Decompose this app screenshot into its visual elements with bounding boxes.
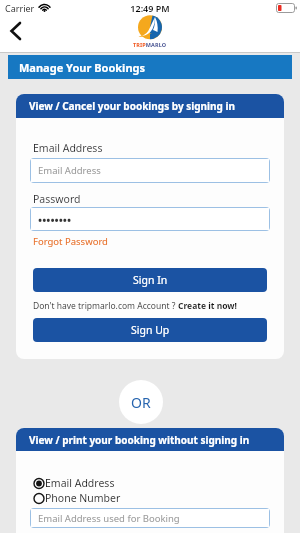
staticText: Don't have tripmarlo.com Account ? xyxy=(33,300,178,312)
staticText: 12:49 PM xyxy=(0,2,300,14)
button[interactable]: Manage Your Bookings xyxy=(8,55,292,79)
staticText: Phone Number xyxy=(45,491,121,505)
button[interactable]: Create it now! xyxy=(178,300,238,312)
button[interactable]: •••••••• xyxy=(31,208,269,230)
button[interactable] xyxy=(2,16,32,48)
button[interactable]: Sign Up xyxy=(33,318,267,342)
staticText: TRIPMARLO xyxy=(133,41,167,48)
staticText: Email Address xyxy=(33,141,103,155)
staticText: Password xyxy=(33,192,81,206)
staticText: Sign In xyxy=(133,273,168,287)
staticText: View / print your booking without signin… xyxy=(29,433,250,447)
button[interactable]: Phone Number xyxy=(33,491,121,505)
button[interactable]: Email Address xyxy=(31,159,269,182)
button[interactable]: Email Address used for Booking xyxy=(31,509,269,527)
staticText: Email Address xyxy=(38,164,101,177)
staticText: Create it now! xyxy=(178,300,238,312)
button[interactable]: Forgot Password xyxy=(33,235,108,248)
staticText: Sign Up xyxy=(131,323,170,337)
button[interactable]: Email Address xyxy=(33,476,115,490)
staticText: View / Cancel your bookings by signing i… xyxy=(29,99,235,113)
staticText: Email Address xyxy=(45,476,115,490)
staticText: Carrier xyxy=(5,2,35,14)
staticText: Email Address used for Booking xyxy=(38,512,180,525)
staticText: Forgot Password xyxy=(33,235,108,248)
staticText: OR xyxy=(131,393,151,412)
button[interactable]: Sign In xyxy=(33,268,267,292)
staticText: Manage Your Bookings xyxy=(19,60,146,75)
staticText: •••••••• xyxy=(38,212,72,227)
